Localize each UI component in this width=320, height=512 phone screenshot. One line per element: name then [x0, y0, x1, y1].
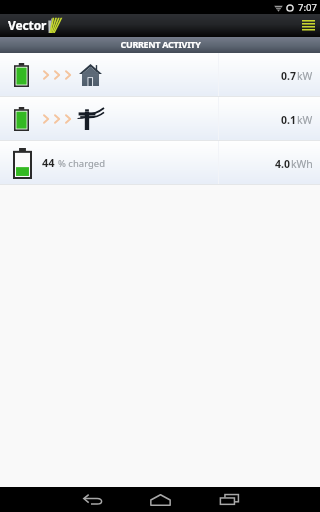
button[interactable]: Recent apps	[202, 487, 256, 512]
button[interactable]: Back	[65, 487, 119, 512]
staticText: 7:07	[298, 1, 317, 14]
staticText: kW	[297, 69, 313, 83]
staticText: kWh	[291, 157, 313, 171]
staticText: 0.1	[281, 113, 296, 127]
staticText: % charged	[58, 157, 105, 170]
staticText: 4.0	[275, 157, 290, 171]
staticText: 44	[42, 155, 55, 170]
button[interactable]: Menu	[296, 14, 320, 37]
staticText: 0.7	[281, 69, 296, 83]
button[interactable]: 44	[0, 141, 320, 185]
staticText: CURRENT ACTIVITY	[120, 38, 201, 50]
button[interactable]: 0.7	[0, 53, 320, 97]
staticText: Vector	[8, 17, 47, 33]
button[interactable]: 0.1	[0, 97, 320, 141]
button[interactable]: Home	[133, 487, 187, 512]
staticText: kW	[297, 113, 313, 127]
